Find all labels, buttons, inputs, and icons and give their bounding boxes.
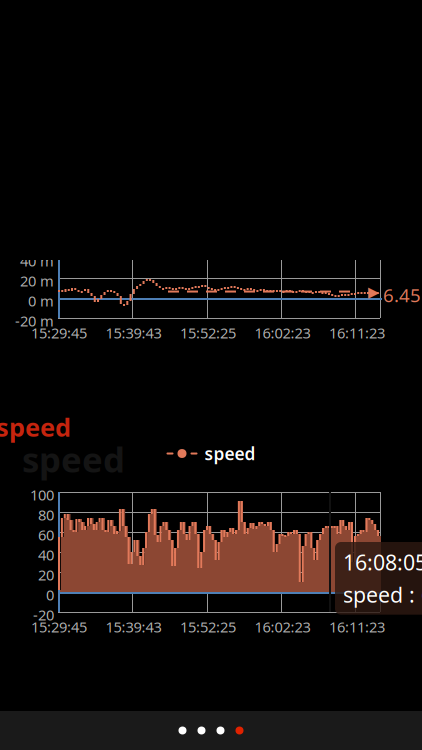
staticText: 16:02:23 <box>254 323 310 342</box>
staticText: 16:11:23 <box>329 323 385 342</box>
staticText: 40 m <box>20 251 54 270</box>
staticText: 15:39:43 <box>105 323 161 342</box>
staticText: 40 <box>38 545 54 564</box>
staticText: 0 m <box>28 291 54 310</box>
staticText: 16:11:23 <box>329 617 385 636</box>
staticText: -20 m <box>15 311 54 330</box>
staticText: 20 m <box>20 271 54 290</box>
staticText: 80 <box>38 505 54 524</box>
staticText: speed <box>22 436 125 482</box>
staticText: 20 <box>38 565 54 584</box>
staticText: speed <box>204 442 255 465</box>
staticText: -20 <box>33 605 54 624</box>
staticText: 15:29:45 <box>31 617 87 636</box>
staticText: ▶ <box>368 284 379 300</box>
staticText: 15:52:25 <box>180 323 236 342</box>
staticText: speed <box>0 410 71 444</box>
staticText: 16:02:23 <box>254 617 310 636</box>
staticText: speed : 68.4 <box>343 580 422 609</box>
staticText: 100 <box>30 485 54 504</box>
staticText: 6.45 <box>383 283 421 307</box>
staticText: 15:52:25 <box>180 617 236 636</box>
staticText: 0 <box>46 585 54 604</box>
staticText: 16:08:05 <box>343 548 422 576</box>
staticText: 15:39:43 <box>105 617 161 636</box>
staticText: 15:29:45 <box>31 323 87 342</box>
staticText: 60 <box>38 525 54 544</box>
